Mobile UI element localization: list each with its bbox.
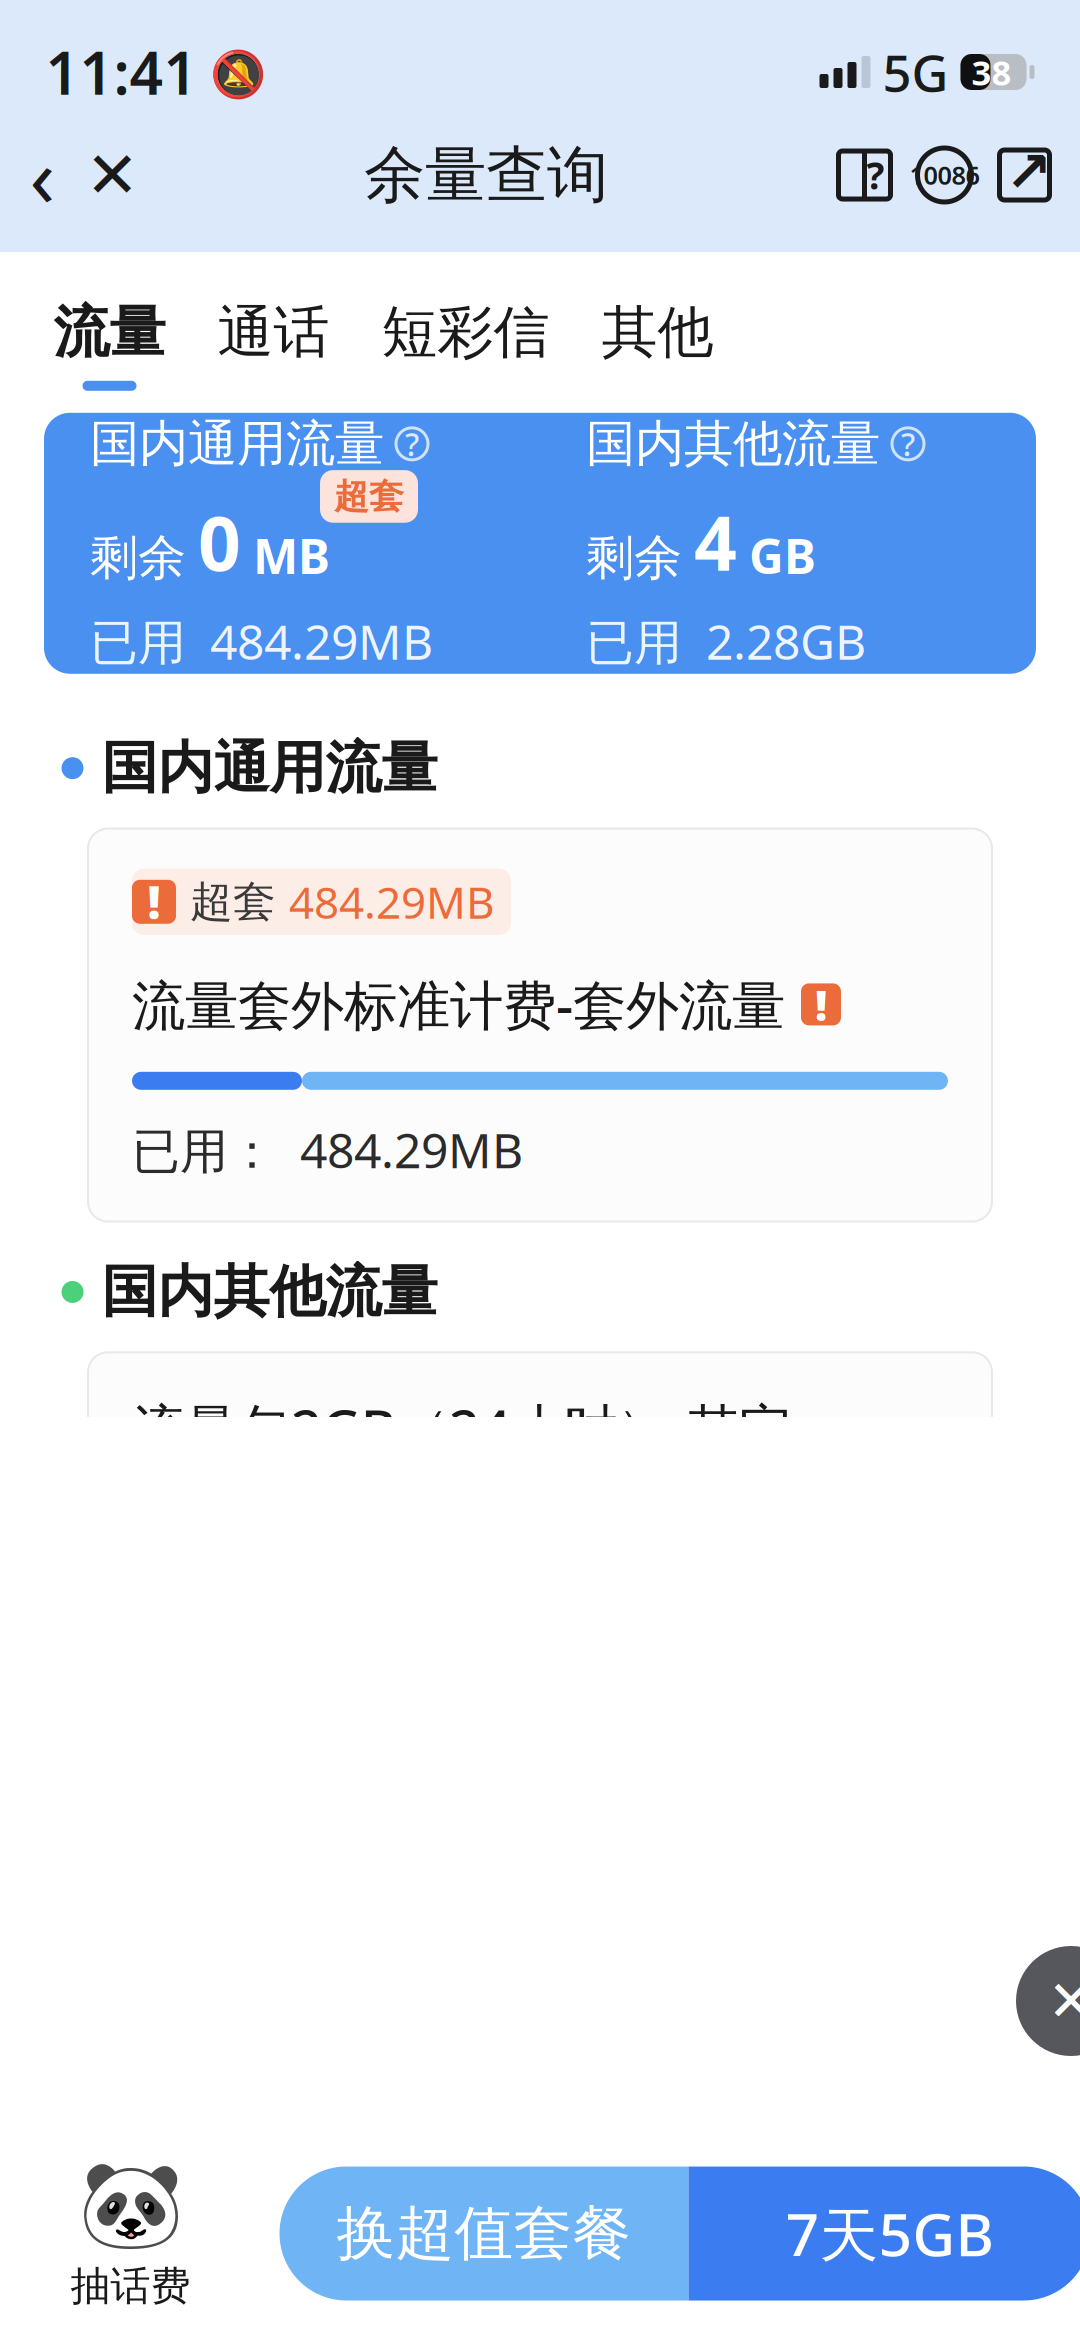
- staticText: 超套: [190, 876, 289, 928]
- staticText: 国内其他流量: [101, 1258, 437, 1326]
- staticText: ?: [405, 423, 419, 465]
- staticText: !: [815, 976, 827, 1033]
- button[interactable]: Help: [824, 135, 904, 215]
- staticText: 流量套外标准计费-套外流量: [132, 969, 785, 1040]
- button[interactable]: Share: [984, 135, 1064, 215]
- staticText: 已用 2.28GB: [586, 609, 866, 673]
- staticText: 流量包2GB（24小时）-其它: [132, 1392, 793, 1463]
- staticText: 已用 484.29MB: [90, 609, 433, 673]
- staticText: GB: [749, 523, 816, 587]
- staticText: 查看更多: [416, 2258, 608, 2317]
- staticText: 4: [694, 492, 737, 591]
- button[interactable]: 7天5GB: [688, 2166, 1080, 2300]
- staticText: 🐼: [77, 2156, 183, 2254]
- staticText: !: [147, 872, 160, 932]
- staticText: ✕: [1047, 1969, 1080, 2033]
- staticText: 11:41: [45, 33, 197, 111]
- button[interactable]: Back: [7, 135, 77, 215]
- staticText: ✕: [85, 139, 139, 211]
- staticText: ⌄: [624, 2254, 664, 2308]
- button[interactable]: 🐼: [55, 2156, 205, 2311]
- staticText: ‹: [29, 120, 55, 230]
- staticText: 超套: [334, 475, 404, 518]
- staticText: 通话: [217, 298, 329, 367]
- staticText: 国内通用流量: [101, 734, 437, 803]
- staticText: 国内通用流量: [90, 413, 384, 474]
- button[interactable]: 其他: [601, 298, 765, 391]
- button[interactable]: 查看更多: [88, 2237, 992, 2337]
- staticText: 0: [198, 492, 241, 591]
- staticText: 换超值套餐: [336, 2197, 631, 2270]
- staticText: 🔕: [197, 42, 265, 102]
- staticText: 10086: [909, 158, 979, 192]
- button[interactable]: 换超值套餐: [279, 2166, 688, 2300]
- staticText: 失效时间： 2025-03-21 22:15:20: [132, 2139, 787, 2197]
- staticText: 484.29MB: [289, 873, 495, 931]
- staticText: ?: [866, 150, 884, 200]
- staticText: 7天5GB: [785, 2194, 993, 2272]
- staticText: 流量: [53, 298, 165, 367]
- staticText: 余量查询: [364, 137, 608, 213]
- button[interactable]: Dismiss floating panel: [1016, 1946, 1080, 2056]
- staticText: ↗: [1005, 140, 1052, 204]
- staticText: 国内其他流量: [586, 413, 880, 474]
- staticText: 已用： 484.29MB: [132, 1118, 523, 1181]
- staticText: 短彩信: [381, 298, 549, 367]
- staticText: 抽话费: [70, 2262, 190, 2311]
- staticText: 其他: [601, 298, 713, 367]
- staticText: 38: [971, 49, 1011, 95]
- button[interactable]: 短彩信: [381, 298, 601, 391]
- button[interactable]: Call 10086: [904, 135, 984, 215]
- staticText: MB: [253, 523, 330, 587]
- button[interactable]: 通话: [217, 298, 381, 391]
- staticText: 5G: [882, 38, 948, 106]
- staticText: ?: [901, 423, 915, 465]
- button[interactable]: Close: [77, 135, 147, 215]
- staticText: 剩余: [90, 528, 186, 587]
- staticText: 剩余: [586, 528, 682, 587]
- button[interactable]: 流量: [53, 298, 217, 391]
